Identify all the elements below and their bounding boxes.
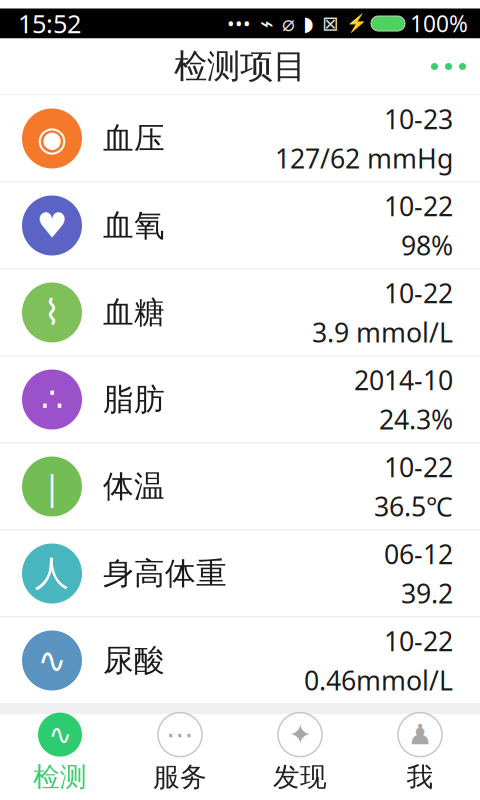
button[interactable]: ∿ (0, 617, 480, 703)
staticText: ⌇ (43, 293, 60, 332)
staticText: ∴ (41, 380, 63, 419)
staticText: 尿酸 (103, 642, 165, 679)
staticText: 人 (34, 552, 69, 595)
staticText: 39.2 (401, 575, 453, 611)
staticText: 2014-10 (354, 362, 453, 397)
staticText: | (42, 463, 61, 509)
button[interactable]: ∴ (0, 356, 480, 442)
staticText: ◉ (37, 119, 67, 158)
staticText: ⋯ (166, 719, 194, 750)
staticText: 10-22 (384, 449, 453, 484)
staticText: ⚡ (346, 14, 368, 33)
staticText: 10-22 (384, 275, 453, 310)
button[interactable]: ✦ (240, 714, 360, 791)
staticText: 06-12 (384, 536, 453, 571)
button[interactable]: | (0, 443, 480, 529)
staticText: 15:52 (18, 7, 81, 40)
staticText: 3.9 mmol/L (312, 314, 453, 350)
staticText: ◗ (303, 12, 314, 35)
staticText: 100% (410, 8, 468, 38)
staticText: ⌁ (260, 11, 274, 36)
staticText: 98% (401, 227, 453, 263)
staticText: 24.3% (379, 401, 453, 437)
staticText: ∿ (48, 719, 71, 750)
button[interactable]: 更多 (417, 38, 480, 94)
staticText: 发现 (273, 761, 327, 793)
staticText: 127/62 mmHg (275, 140, 453, 176)
staticText: ♟ (407, 719, 432, 750)
staticText: 10-22 (384, 188, 453, 223)
staticText: 36.5℃ (374, 488, 453, 524)
button[interactable]: ∿ (0, 714, 120, 791)
staticText: 检测 (33, 761, 87, 793)
button[interactable]: ⋯ (120, 714, 240, 791)
staticText: 血糖 (103, 294, 165, 331)
staticText: 体温 (103, 468, 165, 505)
staticText: 服务 (153, 761, 207, 793)
button[interactable]: ⌇ (0, 269, 480, 355)
staticText: ∿ (37, 641, 66, 680)
staticText: ✦ (288, 719, 311, 750)
button[interactable]: ♟ (360, 714, 480, 791)
staticText: 我 (406, 761, 433, 793)
button[interactable]: 人 (0, 530, 480, 616)
staticText: ⊠ (322, 12, 339, 35)
staticText: 脂肪 (103, 381, 165, 418)
staticText: 10-23 (384, 101, 453, 136)
staticText: 身高体重 (103, 555, 227, 592)
staticText: 血氧 (103, 207, 165, 244)
button[interactable]: ◉ (0, 95, 480, 181)
staticText: ⌀ (282, 11, 295, 36)
staticText: 10-22 (384, 623, 453, 658)
button[interactable]: ♥ (0, 182, 480, 268)
staticText: 血压 (103, 120, 165, 157)
staticText: ♥ (36, 206, 67, 245)
staticText: ••• (227, 10, 251, 37)
staticText: 0.46mmol/L (304, 662, 453, 698)
staticText: 检测项目 (174, 46, 306, 87)
